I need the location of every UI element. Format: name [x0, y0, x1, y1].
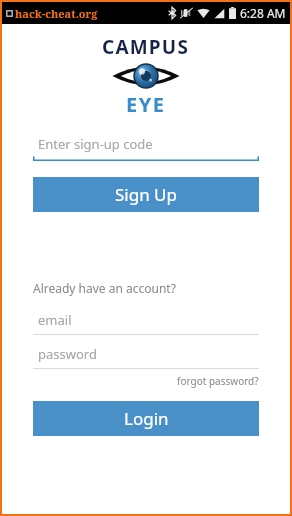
- staticText: forgot password?: [177, 374, 259, 388]
- button[interactable]: email: [33, 308, 259, 335]
- staticText: hack-cheat.org: [15, 6, 98, 21]
- button[interactable]: Enter sign-up code: [33, 132, 259, 161]
- button[interactable]: Login: [33, 401, 259, 436]
- staticText: email: [38, 311, 72, 329]
- staticText: Sign Up: [115, 183, 177, 206]
- staticText: Already have an account?: [33, 280, 176, 296]
- button[interactable]: Sign Up: [33, 177, 259, 212]
- staticText: Login: [124, 407, 169, 430]
- staticText: EYE: [126, 91, 166, 118]
- staticText: Enter sign-up code: [38, 135, 153, 153]
- staticText: password: [38, 345, 97, 363]
- button[interactable]: password: [33, 342, 259, 369]
- staticText: CAMPUS: [102, 34, 190, 60]
- staticText: 6:28 AM: [240, 5, 286, 21]
- button[interactable]: forgot password?: [33, 373, 259, 389]
